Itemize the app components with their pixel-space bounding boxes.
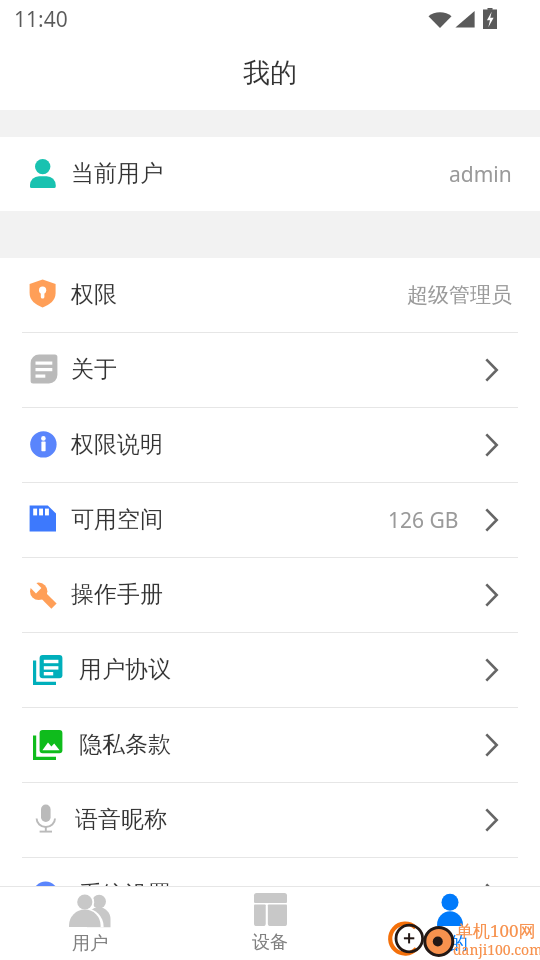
- staticText: 隐私条款: [79, 730, 171, 759]
- staticText: 系统设置: [79, 880, 171, 909]
- button[interactable]: 设备: [180, 887, 360, 960]
- staticText: 权限: [71, 280, 117, 309]
- staticText: 语音昵称: [75, 805, 167, 834]
- staticText: 我的: [432, 932, 468, 955]
- staticText: 11:40: [14, 5, 68, 34]
- button[interactable]: 用户: [0, 887, 180, 960]
- button[interactable]: 权限: [0, 258, 540, 333]
- button[interactable]: 权限说明: [0, 408, 540, 483]
- staticText: danji100.com: [453, 940, 540, 959]
- button[interactable]: 系统设置: [0, 858, 540, 933]
- staticText: 用户协议: [79, 655, 171, 684]
- button[interactable]: 我的: [360, 887, 540, 960]
- button[interactable]: 语音昵称: [0, 783, 540, 858]
- staticText: 操作手册: [71, 580, 163, 609]
- staticText: 可用空间: [71, 505, 163, 534]
- staticText: 我的: [243, 56, 297, 90]
- button[interactable]: 可用空间: [0, 483, 540, 558]
- staticText: admin: [449, 160, 512, 189]
- staticText: 126 GB: [388, 506, 459, 535]
- button[interactable]: 隐私条款: [0, 708, 540, 783]
- button[interactable]: 关于: [0, 333, 540, 408]
- staticText: 设备: [252, 931, 288, 954]
- staticText: 权限说明: [71, 430, 163, 459]
- staticText: 用户: [72, 932, 108, 955]
- staticText: 单机100网: [456, 919, 536, 942]
- button[interactable]: 操作手册: [0, 558, 540, 633]
- button[interactable]: 当前用户: [0, 137, 540, 211]
- button[interactable]: 用户协议: [0, 633, 540, 708]
- staticText: 超级管理员: [407, 282, 512, 308]
- staticText: 关于: [71, 355, 117, 384]
- staticText: 当前用户: [71, 159, 163, 188]
